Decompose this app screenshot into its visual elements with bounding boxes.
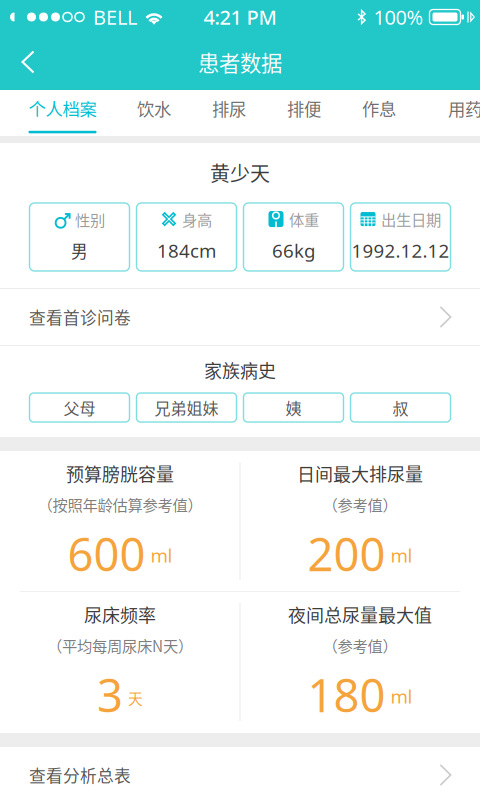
staticText: 日间最大排尿量 — [297, 460, 423, 486]
staticText: （平均每周尿床N天） — [47, 634, 193, 656]
staticText: 叔 — [392, 396, 408, 419]
button[interactable]: 排便 — [274, 90, 334, 136]
staticText: 1992.12.12 — [351, 238, 449, 263]
button[interactable]: 兄弟姐妹 — [136, 393, 236, 422]
button[interactable]: 姨 — [243, 393, 343, 422]
staticText: 100% — [373, 4, 423, 30]
button[interactable]: 个人档案 — [15, 90, 109, 136]
staticText: （参考值） — [322, 634, 397, 656]
staticText: 家族病史 — [204, 357, 276, 383]
staticText: 饮水 — [137, 96, 171, 121]
staticText: 预算膀胱容量 — [66, 460, 174, 486]
button[interactable]: Back — [0, 34, 56, 90]
staticText: 出生日期 — [381, 208, 441, 230]
staticText: BELL — [93, 4, 137, 30]
staticText: 查看首诊问卷 — [29, 305, 131, 329]
staticText: 个人档案 — [28, 96, 96, 121]
button[interactable]: 查看分析总表 — [0, 747, 480, 800]
staticText: 尿床频率 — [84, 601, 156, 627]
staticText: 180 — [307, 664, 385, 725]
staticText: 作息 — [362, 96, 396, 121]
staticText: ml — [150, 543, 172, 568]
button[interactable]: 查看首诊问卷 — [0, 289, 480, 345]
staticText: 父母 — [63, 396, 95, 419]
button[interactable]: 父母 — [29, 393, 129, 422]
staticText: 66kg — [272, 238, 315, 263]
staticText: 查看分析总表 — [29, 763, 131, 787]
staticText: 天 — [128, 687, 143, 709]
staticText: 患者数据 — [198, 47, 282, 77]
staticText: （按照年龄估算参考值） — [37, 493, 202, 515]
button[interactable]: 排尿 — [199, 90, 259, 136]
staticText: 4:21 PM — [203, 4, 276, 30]
staticText: 兄弟姐妹 — [154, 396, 218, 419]
staticText: ml — [390, 543, 412, 568]
staticText: 排尿 — [212, 96, 246, 121]
staticText: 600 — [67, 523, 145, 584]
button[interactable]: 作息 — [349, 90, 409, 136]
staticText: 184cm — [157, 238, 216, 263]
staticText: 夜间总尿量最大值 — [288, 601, 432, 627]
staticText: 200 — [307, 523, 385, 584]
staticText: 体重 — [289, 208, 319, 230]
button[interactable]: 叔 — [350, 393, 450, 422]
staticText: 身高 — [182, 208, 212, 230]
staticText: 性别 — [75, 208, 105, 230]
staticText: 用药 — [448, 96, 480, 121]
staticText: 黄少天 — [210, 158, 270, 187]
staticText: ml — [390, 684, 412, 709]
staticText: 3 — [97, 664, 123, 725]
staticText: 排便 — [287, 96, 321, 121]
staticText: （参考值） — [322, 493, 397, 515]
button[interactable]: 用药 — [435, 90, 480, 136]
staticText: 男 — [71, 238, 88, 263]
staticText: 姨 — [285, 396, 301, 419]
button[interactable]: 饮水 — [124, 90, 184, 136]
